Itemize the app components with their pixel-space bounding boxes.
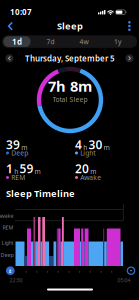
staticText: 05:04 — [117, 277, 130, 284]
button[interactable]: 7d — [35, 36, 65, 47]
staticText: Total Sleep — [52, 95, 87, 104]
staticText: Thursday, September 5 — [25, 53, 115, 64]
staticText: 59 — [19, 160, 33, 176]
staticText: 1y — [114, 37, 121, 46]
button[interactable]: Wake time — [127, 266, 135, 275]
staticText: 4 — [75, 136, 82, 152]
staticText: Light — [80, 149, 95, 157]
staticText: m — [35, 167, 41, 176]
staticText: REM — [11, 173, 25, 182]
staticText: m — [21, 143, 27, 152]
staticText: 22:30 — [9, 277, 22, 284]
button[interactable]: More options — [126, 20, 132, 31]
staticText: 4w — [79, 37, 88, 46]
staticText: Deep — [11, 149, 28, 157]
staticText: 7d — [46, 37, 54, 46]
staticText: Light — [1, 239, 13, 246]
staticText: Awake — [80, 173, 101, 182]
staticText: Deep — [0, 251, 13, 259]
staticText: h — [83, 143, 87, 152]
staticText: m — [90, 167, 96, 176]
staticText: 7h 8m — [48, 76, 92, 96]
button[interactable]: Next day — [125, 54, 133, 62]
button[interactable]: Back — [8, 22, 13, 31]
button[interactable]: Previous day — [5, 54, 13, 62]
staticText: z — [9, 267, 12, 274]
staticText: 1d — [12, 36, 22, 47]
staticText: 39 — [6, 136, 20, 152]
staticText: REM — [2, 224, 13, 231]
staticText: Sleep — [57, 20, 83, 32]
staticText: 1 — [6, 160, 13, 176]
staticText: h — [14, 167, 18, 176]
staticText: 20 — [75, 160, 89, 176]
staticText: Awake — [0, 212, 13, 219]
staticText: m — [104, 143, 110, 152]
button[interactable]: 1d — [3, 36, 30, 47]
button[interactable]: 1y — [102, 36, 132, 47]
button[interactable]: Bedtime — [6, 266, 15, 275]
button[interactable]: 4w — [69, 36, 99, 47]
staticText: Sleep Timeline — [6, 187, 75, 200]
staticText: 10:07 — [10, 7, 32, 17]
staticText: 30 — [88, 136, 102, 152]
